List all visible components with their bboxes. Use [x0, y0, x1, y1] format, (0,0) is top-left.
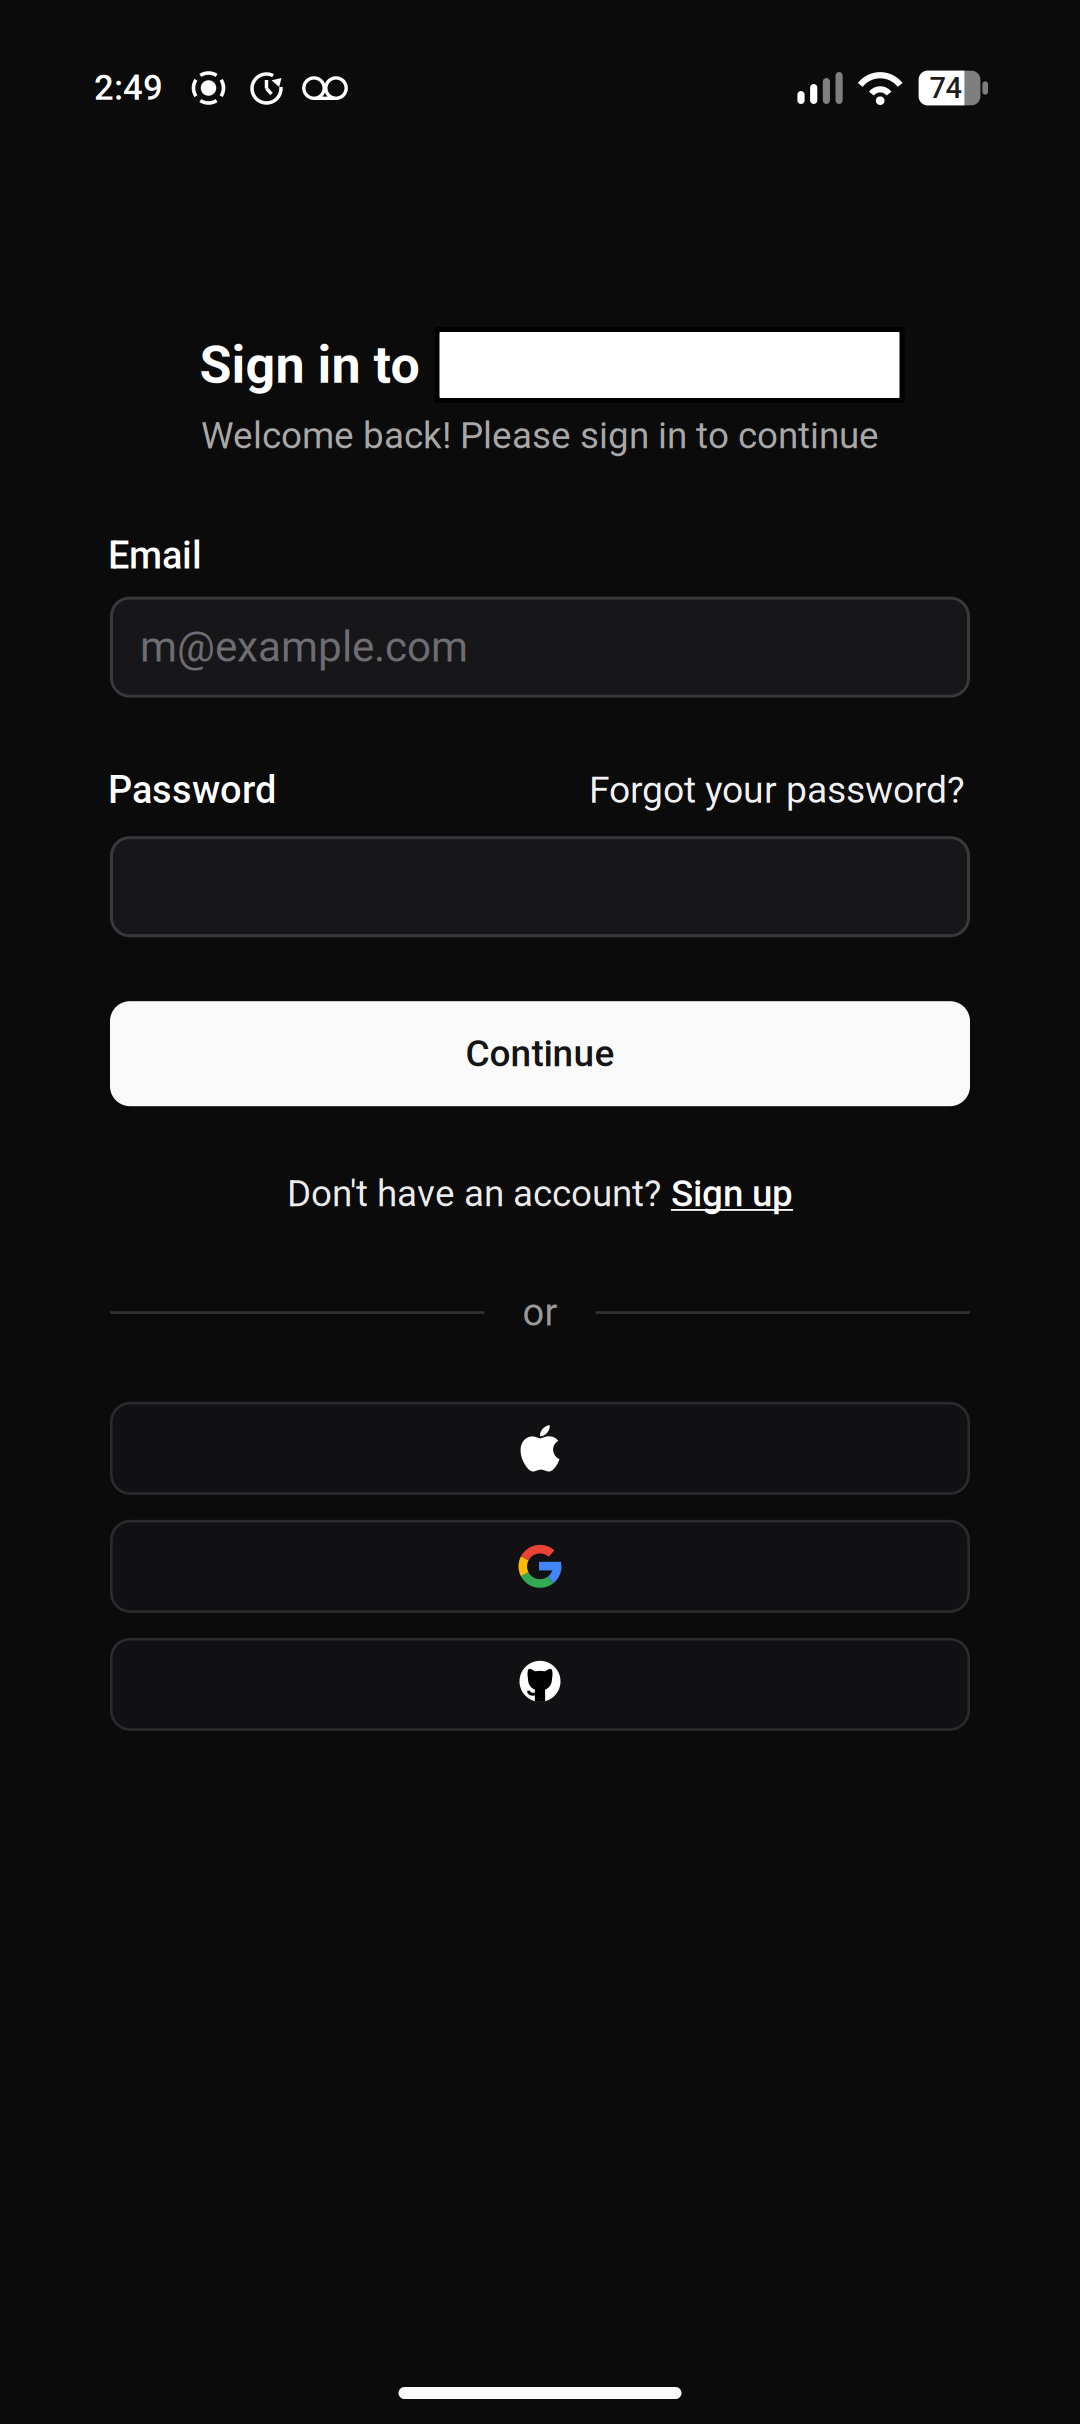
button[interactable]: Sign in with Apple [110, 1402, 970, 1495]
staticText: Sign in to [199, 334, 419, 395]
button[interactable]: Continue [110, 1001, 970, 1106]
staticText: m@example.com [140, 622, 468, 672]
button[interactable]: Sign up [671, 1172, 793, 1215]
button[interactable]: Sign in with Google [110, 1520, 970, 1613]
staticText: Password [108, 768, 276, 812]
staticText: Continue [465, 1032, 614, 1075]
button[interactable]: Sign in with GitHub [110, 1638, 970, 1731]
button[interactable]: Forgot your password? [589, 768, 965, 812]
staticText: or [522, 1290, 557, 1335]
staticText: Email [108, 533, 202, 578]
staticText: Sign up [671, 1172, 793, 1215]
staticText: Forgot your password? [589, 768, 965, 812]
staticText: Don't have an account? [287, 1172, 661, 1215]
button[interactable]: Email [110, 597, 970, 698]
staticText: 74 [930, 71, 962, 105]
staticText: 2:49 [94, 68, 163, 108]
staticText: Welcome back! Please sign in to continue [201, 414, 879, 457]
button[interactable]: Password [110, 836, 970, 937]
